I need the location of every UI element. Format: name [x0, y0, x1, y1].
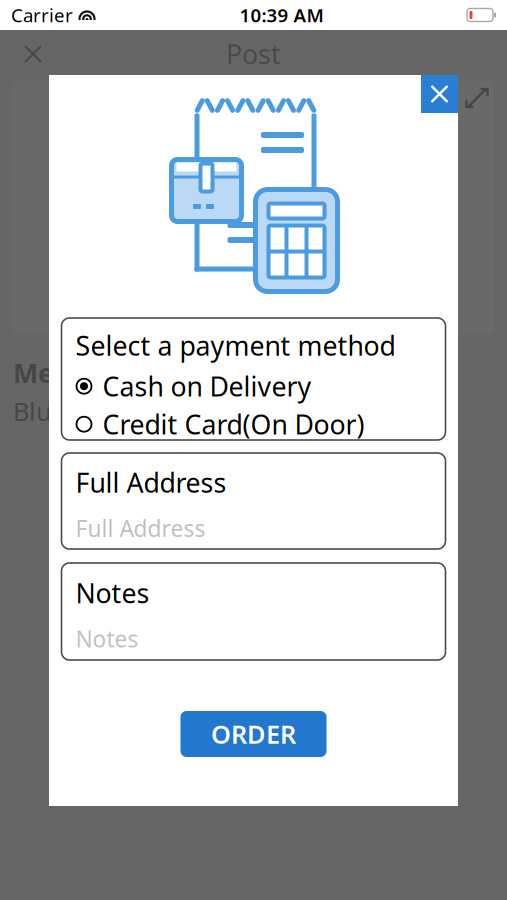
- button[interactable]: Close: [12, 33, 54, 75]
- staticText: Blue, size 42: [13, 394, 160, 428]
- button[interactable]: Close: [421, 75, 458, 113]
- staticText: Cash on Delivery: [102, 368, 311, 404]
- staticText: Select a payment method: [75, 328, 395, 363]
- staticText: Carrier: [11, 3, 73, 27]
- staticText: Notes: [75, 624, 138, 654]
- staticText: Full Address: [75, 513, 205, 543]
- staticText: ORDER: [211, 717, 296, 751]
- button[interactable]: Cash on Delivery: [61, 367, 445, 405]
- staticText: Men's Shoes: [13, 355, 175, 390]
- button[interactable]: ORDER: [180, 711, 326, 757]
- button[interactable]: Expand: [460, 81, 494, 115]
- staticText: Notes: [75, 575, 149, 611]
- staticText: Credit Card(On Door): [102, 406, 364, 442]
- staticText: Post: [226, 36, 281, 72]
- staticText: 10:39 AM: [239, 3, 323, 27]
- button[interactable]: Credit Card(On Door): [61, 405, 445, 443]
- staticText: Full Address: [75, 465, 226, 500]
